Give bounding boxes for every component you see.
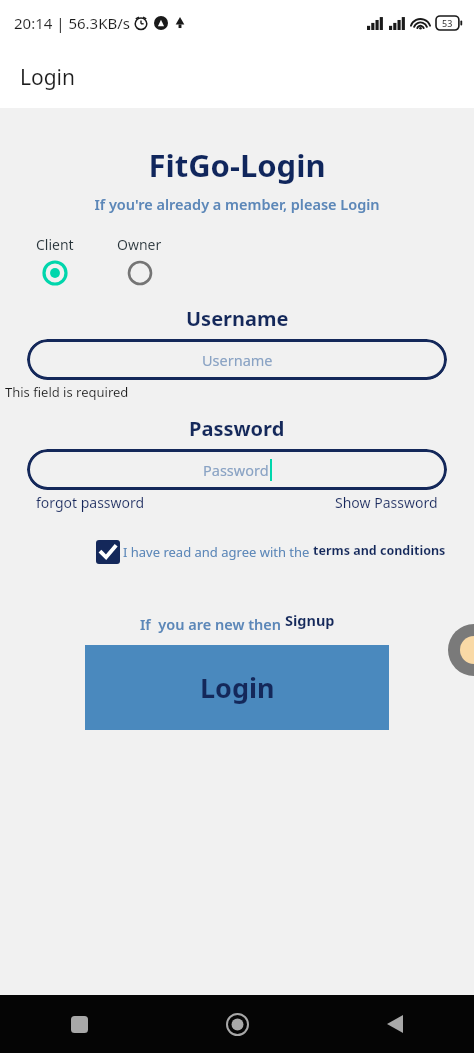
button[interactable]: Home [158, 995, 316, 1053]
button[interactable]: Assistant [448, 624, 474, 676]
staticText: This field is required [5, 383, 129, 401]
staticText: Username [186, 305, 289, 332]
staticText: Client [36, 235, 74, 254]
staticText: Password [189, 415, 285, 442]
button[interactable]: Owner [117, 235, 162, 286]
button[interactable]: Client [36, 235, 74, 286]
button[interactable]: Signup [285, 610, 335, 630]
staticText: If you are new then [140, 614, 285, 634]
staticText: I have read and agree with the [123, 543, 313, 561]
button[interactable]: forgot password [36, 493, 145, 512]
button[interactable]: Show Password [335, 493, 438, 512]
button[interactable]: Back [316, 995, 474, 1053]
staticText: Login [20, 63, 76, 92]
staticText: 53 [442, 17, 453, 29]
staticText: Signup [285, 610, 335, 630]
button[interactable]: Recent apps [0, 995, 158, 1053]
staticText: Login [200, 669, 275, 706]
staticText: Username [202, 350, 273, 370]
staticText: If you're already a member, please Login [94, 194, 380, 214]
button[interactable]: Username [27, 339, 447, 380]
button[interactable]: I have read and agree with the [96, 540, 446, 564]
staticText: terms and conditions [313, 542, 446, 559]
button[interactable]: Login [85, 645, 389, 730]
staticText: 20:14 | 56.3KB/s [14, 13, 130, 33]
staticText: Owner [117, 235, 162, 254]
button[interactable]: Password [27, 449, 447, 490]
staticText: Password [203, 460, 269, 480]
staticText: FitGo-Login [148, 144, 326, 186]
